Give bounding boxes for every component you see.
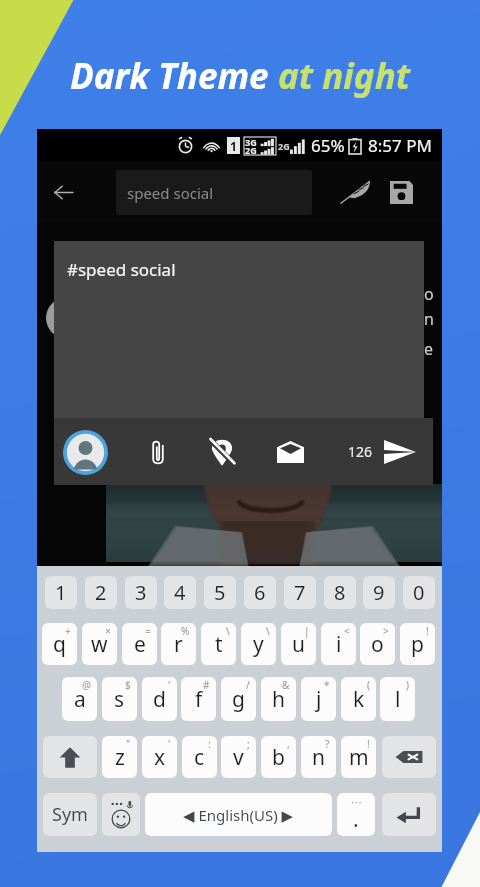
button[interactable]: Emoji xyxy=(102,793,140,836)
button[interactable]: y xyxy=(241,623,276,665)
button[interactable]: 3 xyxy=(125,576,157,609)
staticText: 2 xyxy=(95,579,107,606)
staticText: ! xyxy=(426,624,429,638)
staticText: ) xyxy=(406,678,409,692)
button[interactable]: 9 xyxy=(363,576,395,609)
staticText: t xyxy=(215,630,223,659)
button[interactable]: r xyxy=(161,623,196,665)
button[interactable]: Account xyxy=(61,428,109,476)
button[interactable]: c xyxy=(182,736,217,778)
button[interactable]: 0 xyxy=(403,576,435,609)
button[interactable]: 1 xyxy=(45,576,77,609)
button[interactable]: ◀ English(US) ▶ xyxy=(145,793,332,836)
button[interactable]: Attach xyxy=(138,432,178,472)
staticText: + xyxy=(65,624,71,638)
button[interactable]: Shift xyxy=(43,736,97,778)
staticText: 1 xyxy=(230,138,237,154)
button[interactable]: k xyxy=(341,677,376,721)
staticText: / xyxy=(246,678,250,692)
staticText: ' xyxy=(168,737,171,751)
staticText: = xyxy=(145,624,151,638)
staticText: 3G xyxy=(245,136,257,148)
staticText: Sym xyxy=(52,802,88,827)
staticText: ⋯ xyxy=(351,796,362,809)
button[interactable]: t xyxy=(201,623,236,665)
button[interactable]: q xyxy=(42,623,77,665)
staticText: 5 xyxy=(214,579,226,606)
staticText: 1 xyxy=(55,579,67,606)
button[interactable]: p xyxy=(400,623,435,665)
staticText: h xyxy=(272,685,285,714)
button[interactable]: v xyxy=(221,736,256,778)
staticText: g xyxy=(232,685,245,714)
staticText: : xyxy=(208,737,211,751)
staticText: 6 xyxy=(254,579,266,606)
staticText: , xyxy=(287,737,290,751)
staticText: n xyxy=(312,743,325,772)
button[interactable]: l xyxy=(380,677,415,721)
button[interactable]: j xyxy=(301,677,336,721)
staticText: 3 xyxy=(135,579,147,606)
staticText: ◀ English(US) ▶ xyxy=(183,805,294,825)
staticText: 2G xyxy=(245,144,257,156)
button[interactable]: x xyxy=(142,736,177,778)
button[interactable]: z xyxy=(102,736,137,778)
staticText: s xyxy=(114,685,125,714)
staticText: \ xyxy=(266,624,270,638)
button[interactable]: Message xyxy=(270,432,310,472)
staticText: j xyxy=(316,685,322,714)
button[interactable]: 4 xyxy=(164,576,196,609)
staticText: ? xyxy=(325,737,330,751)
staticText: % xyxy=(181,624,190,638)
button[interactable]: b xyxy=(261,736,296,778)
button[interactable]: 7 xyxy=(284,576,316,609)
button[interactable]: d xyxy=(142,677,177,721)
staticText: 4 xyxy=(174,579,186,606)
button[interactable]: Back xyxy=(39,168,87,216)
button[interactable]: e xyxy=(122,623,157,665)
button[interactable]: n xyxy=(301,736,336,778)
button[interactable]: i xyxy=(321,623,356,665)
staticText: u xyxy=(292,630,305,659)
staticText: e xyxy=(134,630,146,659)
staticText: q xyxy=(53,630,66,659)
staticText: 2G xyxy=(278,140,290,152)
button[interactable]: m xyxy=(341,736,376,778)
button[interactable]: Backspace xyxy=(382,736,436,778)
button[interactable]: 6 xyxy=(244,576,276,609)
staticText: @ xyxy=(82,678,91,692)
button[interactable]: h xyxy=(261,677,296,721)
button[interactable]: speed social xyxy=(116,170,312,215)
button[interactable]: Sym xyxy=(43,793,97,836)
button[interactable]: a xyxy=(62,677,97,721)
button[interactable]: u xyxy=(281,623,316,665)
staticText: 8:57 PM xyxy=(368,134,432,157)
staticText: 126 xyxy=(348,442,373,461)
staticText: n xyxy=(424,308,434,330)
button[interactable]: Enter xyxy=(382,793,436,836)
staticText: #speed social xyxy=(67,258,176,281)
button[interactable]: f xyxy=(181,677,216,721)
staticText: at night xyxy=(278,52,411,100)
button[interactable]: g xyxy=(221,677,256,721)
button[interactable]: Send xyxy=(380,432,420,472)
button[interactable]: s xyxy=(102,677,137,721)
staticText: v xyxy=(233,743,244,772)
button[interactable]: 2 xyxy=(85,576,117,609)
staticText: # xyxy=(203,678,210,692)
button[interactable]: o xyxy=(360,623,395,665)
button[interactable]: w xyxy=(82,623,117,665)
button[interactable]: Save xyxy=(378,169,424,215)
staticText: c xyxy=(194,743,205,772)
button[interactable]: Compose xyxy=(332,169,378,215)
button[interactable]: 5 xyxy=(204,576,236,609)
staticText: ' xyxy=(168,678,171,692)
button[interactable]: Location off xyxy=(202,432,242,472)
staticText: " xyxy=(126,737,131,751)
staticText: e xyxy=(424,338,434,360)
staticText: y xyxy=(253,630,264,659)
staticText: | xyxy=(304,624,310,638)
button[interactable]: . xyxy=(337,793,375,836)
staticText: z xyxy=(115,743,125,772)
button[interactable]: 8 xyxy=(324,576,356,609)
